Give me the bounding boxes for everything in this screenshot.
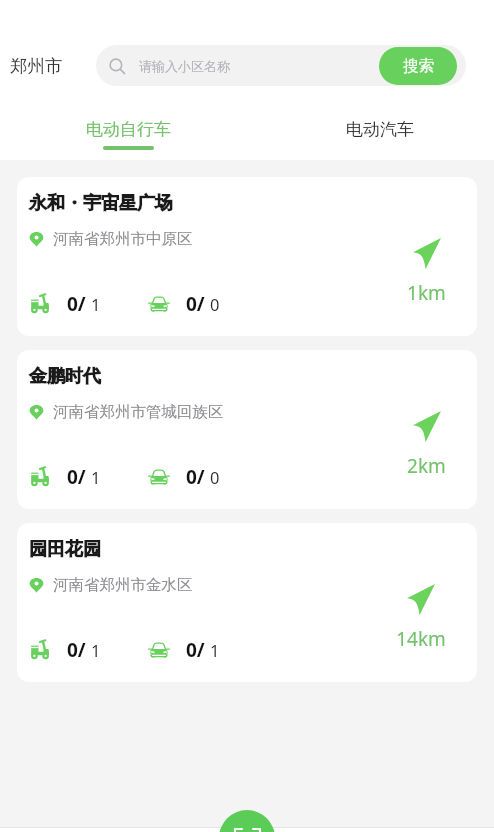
staticText: 河南省郑州市金水区 — [53, 575, 193, 595]
button[interactable]: Scan QR code — [219, 810, 275, 832]
button[interactable]: 永和・宇宙星广场 — [17, 177, 477, 336]
staticText: 14km — [396, 626, 446, 652]
staticText: 0/ — [67, 637, 86, 663]
staticText: 0 — [210, 466, 220, 488]
staticText: 河南省郑州市管城回族区 — [53, 402, 224, 422]
staticText: 0/ — [67, 291, 86, 317]
button[interactable]: 搜索 — [379, 47, 457, 85]
staticText: 0/ — [186, 291, 205, 317]
staticText: 搜索 — [403, 56, 434, 76]
button[interactable]: 电动自行车 — [84, 105, 173, 150]
button[interactable]: 园田花园 — [17, 523, 477, 682]
button[interactable]: 金鹏时代 — [17, 350, 477, 509]
staticText: 金鹏时代 — [29, 365, 101, 388]
staticText: 河南省郑州市中原区 — [53, 229, 193, 249]
staticText: 1km — [407, 280, 446, 306]
button[interactable]: 郑州市 — [10, 55, 63, 77]
staticText: 请输入小区名称 — [139, 58, 230, 74]
staticText: 0/ — [186, 464, 205, 490]
staticText: 0 — [210, 293, 220, 315]
button[interactable]: 电动汽车 — [344, 105, 416, 146]
staticText: 电动自行车 — [86, 119, 171, 140]
staticText: 电动汽车 — [346, 119, 414, 140]
staticText: 0/ — [67, 464, 86, 490]
staticText: 园田花园 — [29, 538, 101, 561]
staticText: 1 — [91, 639, 101, 661]
staticText: 0/ — [186, 637, 205, 663]
staticText: 1 — [210, 639, 220, 661]
staticText: 永和・宇宙星广场 — [29, 192, 173, 215]
staticText: 1 — [91, 293, 101, 315]
staticText: 1 — [91, 466, 101, 488]
staticText: 2km — [407, 453, 446, 479]
